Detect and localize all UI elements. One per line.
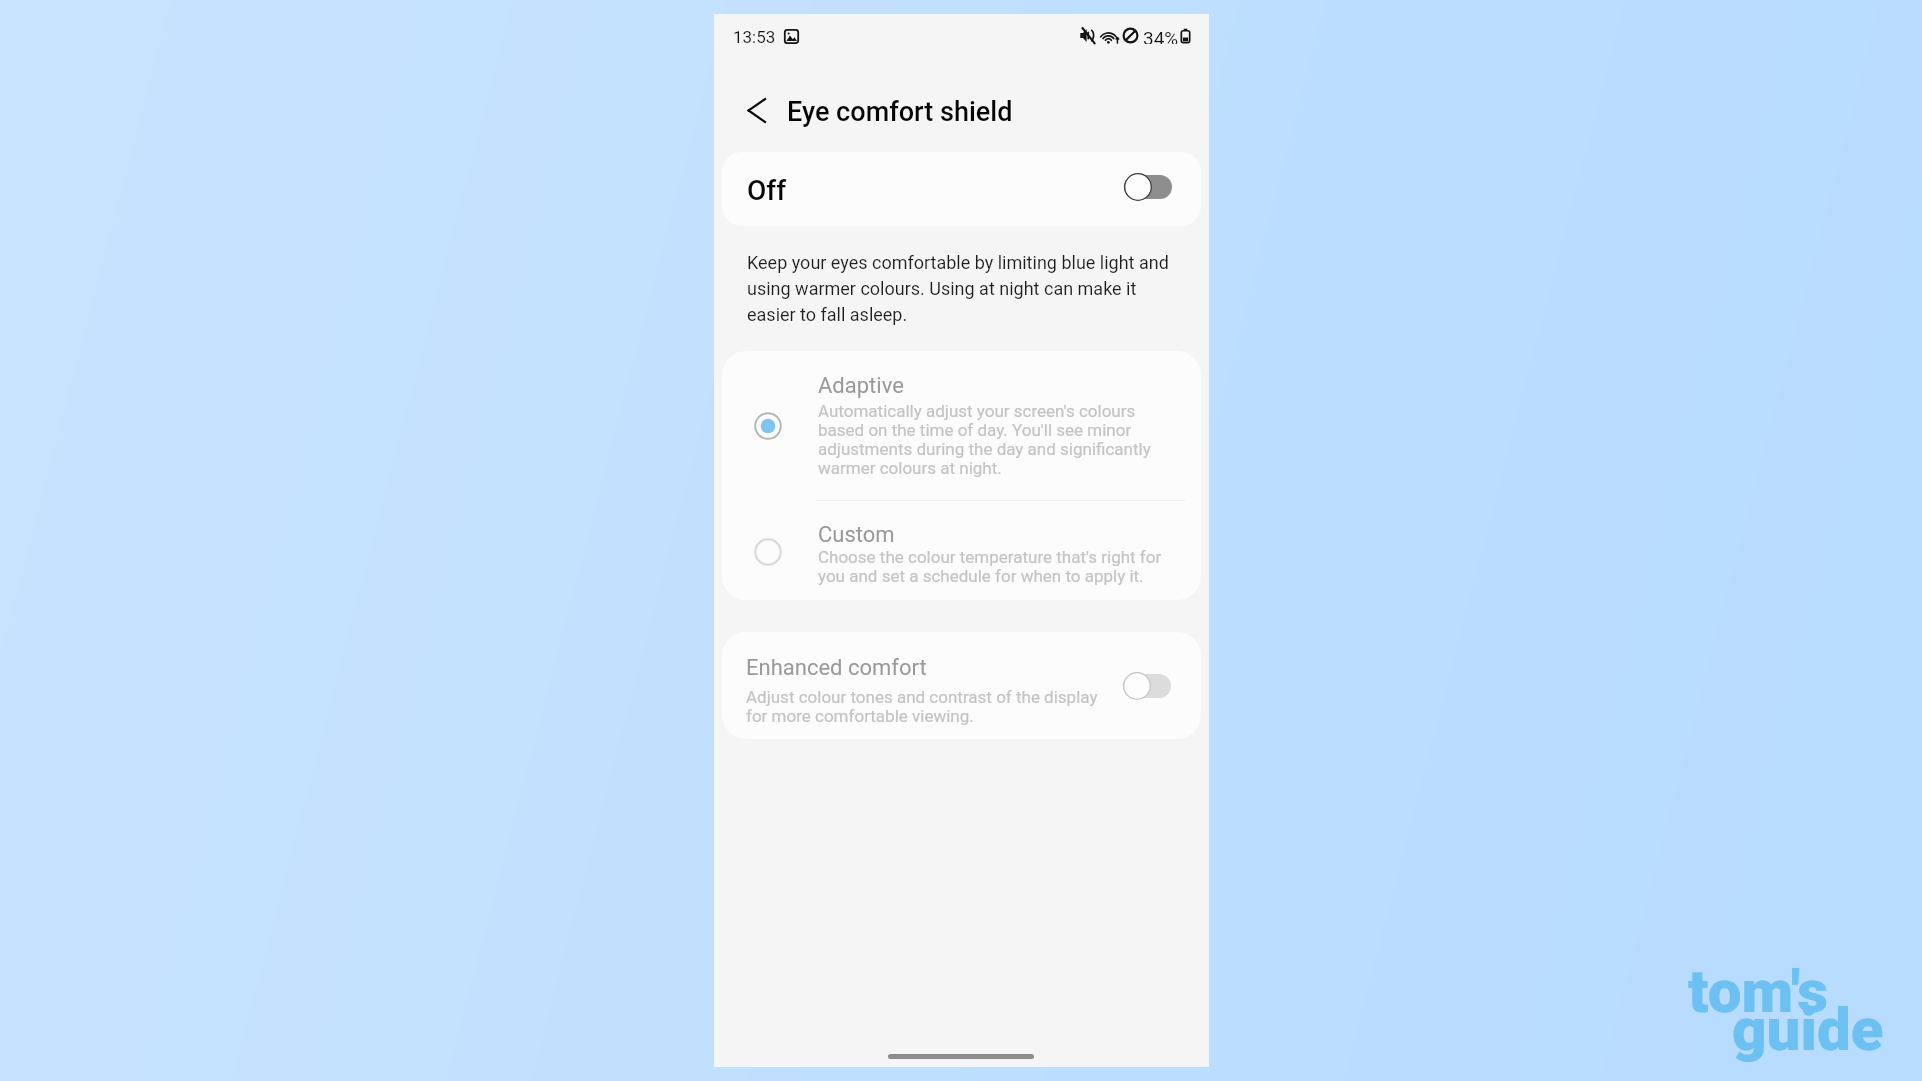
staticText: Automatically adjust your screen's colou… [818, 401, 1162, 478]
staticText: Adjust colour tones and contrast of the … [746, 687, 1106, 726]
staticText: 13:53 [733, 27, 776, 47]
staticText: Eye comfort shield [787, 96, 1013, 128]
staticText: tom's [1688, 956, 1829, 1026]
button[interactable]: Custom [722, 501, 1201, 599]
staticText: 34% [1143, 27, 1179, 44]
staticText: Keep your eyes comfortable by limiting b… [747, 252, 1181, 325]
button[interactable]: Turn on Eye comfort shield [1124, 173, 1172, 201]
staticText: Enhanced comfort [746, 655, 927, 681]
staticText: guide [1732, 994, 1884, 1064]
staticText: Custom [818, 522, 895, 548]
button[interactable]: Back [731, 84, 781, 136]
button[interactable]: Off [722, 152, 1201, 226]
staticText: Adaptive [818, 373, 904, 399]
staticText: Off [747, 174, 787, 207]
button[interactable]: Adaptive [722, 351, 1201, 500]
button[interactable]: Enhanced comfort [722, 632, 1201, 739]
button[interactable]: Turn on Enhanced comfort [1123, 672, 1171, 700]
staticText: Choose the colour temperature that's rig… [818, 547, 1162, 586]
